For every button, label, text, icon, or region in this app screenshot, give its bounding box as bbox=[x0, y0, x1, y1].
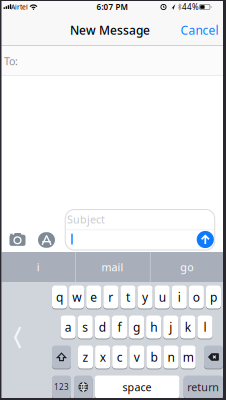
staticText: mail bbox=[101, 260, 123, 274]
button[interactable]: f bbox=[112, 315, 127, 339]
button[interactable]: i bbox=[2, 252, 75, 282]
button[interactable]: i bbox=[172, 285, 187, 309]
button[interactable]: x bbox=[95, 345, 110, 369]
button[interactable]: s bbox=[78, 315, 93, 339]
staticText: b bbox=[150, 349, 157, 365]
button[interactable]: Shift bbox=[52, 345, 71, 369]
staticText: f bbox=[117, 319, 121, 335]
staticText: return bbox=[187, 380, 219, 394]
button[interactable]: mail bbox=[76, 252, 149, 282]
button[interactable]: To bbox=[1, 46, 223, 75]
staticText: v bbox=[134, 349, 140, 365]
button[interactable]: Send bbox=[0, 0, 226, 400]
staticText: a bbox=[65, 319, 72, 335]
button[interactable]: a bbox=[61, 315, 76, 339]
staticText: To: bbox=[4, 54, 18, 68]
staticText: Cancel bbox=[180, 22, 218, 38]
staticText: s bbox=[82, 319, 88, 335]
staticText: go bbox=[180, 260, 193, 274]
button[interactable]: go bbox=[150, 252, 223, 282]
staticText: 6:07 PM bbox=[96, 2, 127, 12]
staticText: x bbox=[100, 349, 106, 365]
staticText: 44% bbox=[182, 2, 199, 12]
staticText: Airtel bbox=[11, 3, 28, 11]
staticText: k bbox=[185, 319, 191, 335]
staticText: h bbox=[150, 319, 157, 335]
staticText: i bbox=[37, 260, 40, 274]
staticText: i bbox=[178, 289, 181, 305]
button[interactable]: q bbox=[52, 285, 67, 309]
button[interactable]: b bbox=[146, 345, 161, 369]
staticText: g bbox=[133, 319, 140, 335]
button[interactable]: y bbox=[137, 285, 153, 309]
button[interactable]: m bbox=[181, 345, 196, 369]
staticText: l bbox=[203, 319, 206, 335]
staticText: space bbox=[123, 380, 152, 394]
button[interactable]: t bbox=[120, 285, 135, 309]
staticText: New Message bbox=[70, 22, 150, 38]
staticText: q bbox=[56, 289, 63, 305]
button[interactable]: d bbox=[95, 315, 110, 339]
button[interactable]: Return bbox=[184, 375, 223, 399]
staticText: j bbox=[169, 319, 172, 335]
button[interactable]: g bbox=[129, 315, 144, 339]
button[interactable]: Camera bbox=[0, 0, 226, 400]
staticText: p bbox=[210, 289, 217, 305]
staticText: n bbox=[168, 349, 175, 365]
staticText: w bbox=[72, 289, 81, 305]
button[interactable]: l bbox=[197, 315, 212, 339]
button[interactable]: p bbox=[206, 285, 221, 309]
staticText: u bbox=[159, 289, 166, 305]
staticText: y bbox=[142, 289, 148, 305]
button[interactable]: Apps bbox=[0, 0, 226, 400]
staticText: z bbox=[82, 349, 88, 365]
button[interactable]: Expand keyboard bbox=[10, 324, 24, 350]
staticText: Subject bbox=[67, 212, 105, 226]
staticText: o bbox=[193, 289, 200, 305]
staticText: r bbox=[108, 289, 113, 305]
button[interactable]: o bbox=[189, 285, 204, 309]
staticText: c bbox=[117, 349, 123, 365]
button[interactable]: n bbox=[163, 345, 179, 369]
button[interactable]: Numbers bbox=[52, 375, 71, 399]
button[interactable]: h bbox=[146, 315, 161, 339]
button[interactable]: e bbox=[86, 285, 101, 309]
button[interactable]: j bbox=[163, 315, 178, 339]
staticText: e bbox=[90, 289, 97, 305]
staticText: d bbox=[99, 319, 106, 335]
button[interactable]: r bbox=[103, 285, 118, 309]
button[interactable]: Cancel bbox=[179, 21, 219, 39]
staticText: m bbox=[183, 349, 194, 365]
button[interactable]: k bbox=[180, 315, 195, 339]
button[interactable]: v bbox=[129, 345, 144, 369]
staticText: 123 bbox=[54, 382, 69, 392]
button[interactable]: c bbox=[112, 345, 127, 369]
button[interactable]: Space bbox=[95, 375, 180, 399]
button[interactable]: u bbox=[155, 285, 170, 309]
staticText: t bbox=[126, 289, 130, 305]
button[interactable]: z bbox=[78, 345, 93, 369]
button[interactable]: Next keyboard bbox=[74, 375, 92, 399]
button[interactable]: w bbox=[69, 285, 84, 309]
button[interactable]: Delete bbox=[204, 345, 223, 369]
